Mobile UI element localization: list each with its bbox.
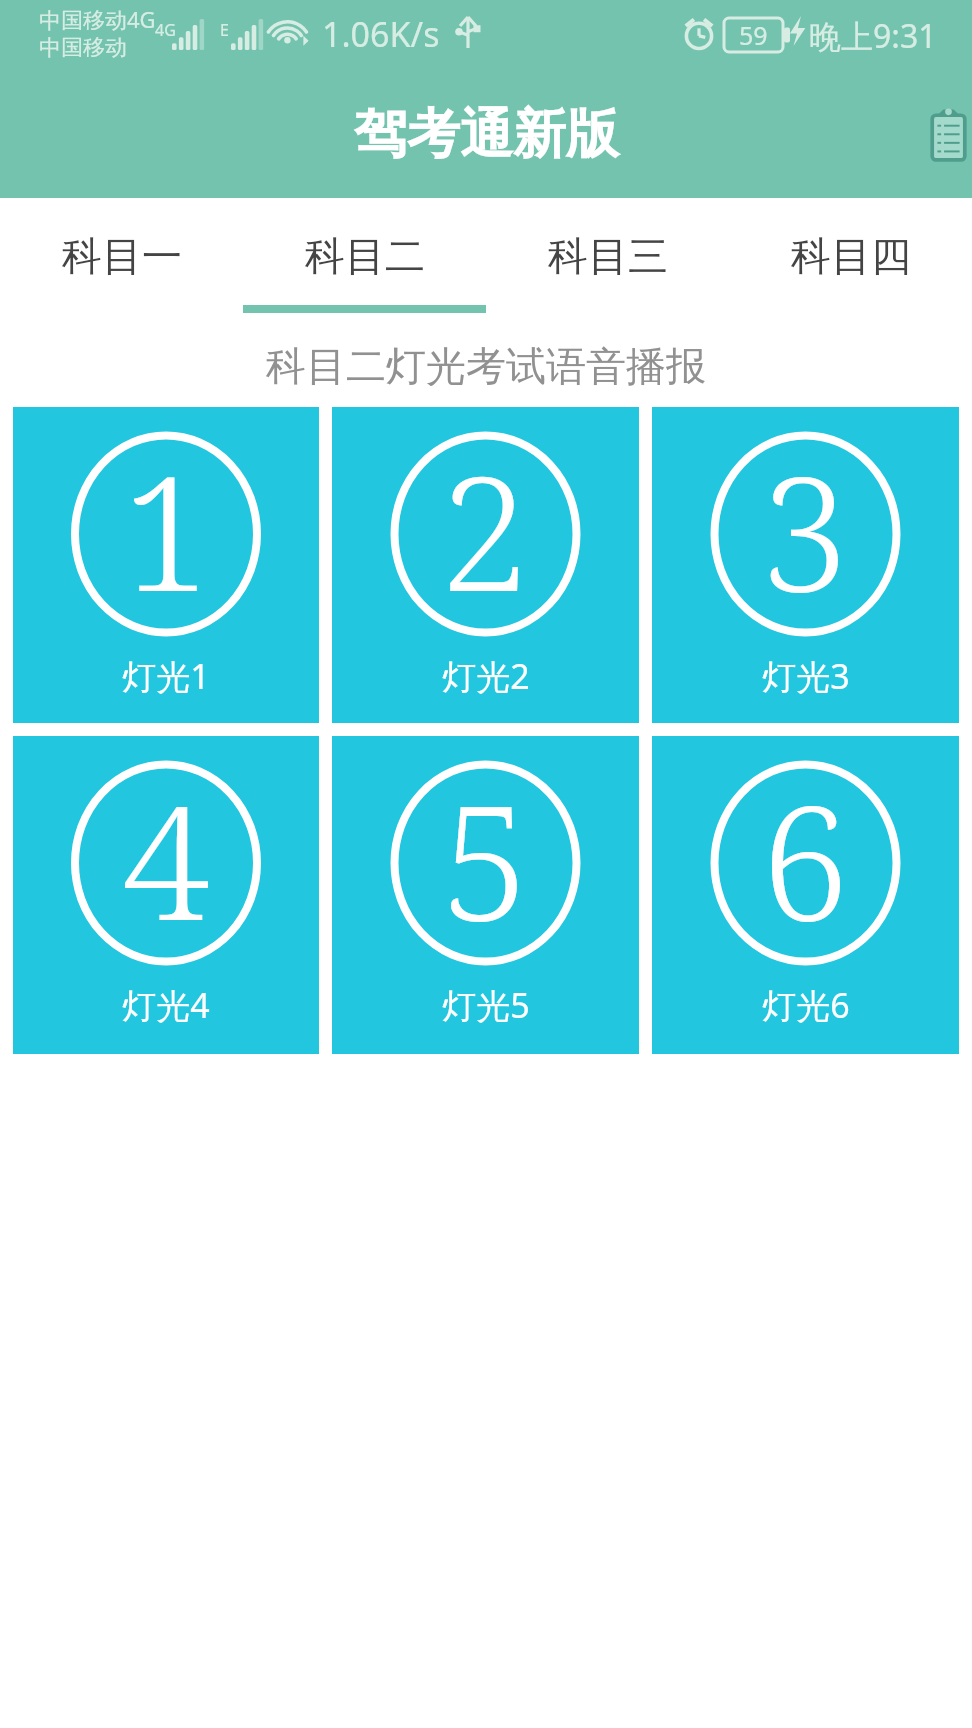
button[interactable]: 6: [652, 736, 959, 1054]
staticText: 5: [441, 751, 530, 966]
staticText: 2: [441, 422, 530, 637]
staticText: 中国移动4G: [39, 4, 156, 34]
staticText: 晚上9:31: [809, 14, 937, 58]
staticText: 灯光5: [442, 982, 530, 1028]
button[interactable]: 科目三: [486, 198, 729, 313]
staticText: 科目二灯光考试语音播报: [0, 341, 972, 391]
button[interactable]: 2: [332, 407, 639, 723]
staticText: 灯光1: [122, 653, 210, 699]
staticText: 科目一: [62, 231, 182, 281]
staticText: 科目二: [305, 231, 425, 281]
button[interactable]: 科目一: [0, 198, 243, 313]
staticText: 驾考通新版: [354, 101, 619, 168]
staticText: E: [220, 19, 229, 41]
button[interactable]: 1: [13, 407, 319, 723]
staticText: 科目三: [548, 231, 668, 281]
button[interactable]: 3: [652, 407, 959, 723]
button[interactable]: 错题本: [906, 90, 972, 180]
staticText: 1: [122, 422, 211, 637]
staticText: 4: [122, 751, 211, 966]
staticText: 灯光6: [762, 982, 850, 1028]
staticText: 科目四: [791, 231, 911, 281]
staticText: 59: [739, 18, 768, 52]
staticText: 4G: [155, 19, 176, 41]
staticText: 中国移动: [39, 34, 127, 62]
button[interactable]: 5: [332, 736, 639, 1054]
staticText: 灯光3: [762, 653, 850, 699]
button[interactable]: 科目二: [243, 198, 486, 313]
button[interactable]: 科目四: [729, 198, 972, 313]
button[interactable]: 4: [13, 736, 319, 1054]
staticText: 灯光4: [122, 982, 210, 1028]
staticText: 1.06K/s: [322, 11, 440, 57]
staticText: 6: [761, 751, 850, 966]
staticText: 灯光2: [442, 653, 530, 699]
staticText: 3: [761, 422, 850, 637]
